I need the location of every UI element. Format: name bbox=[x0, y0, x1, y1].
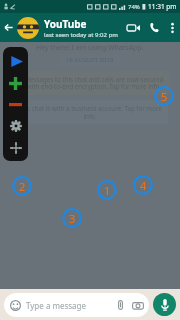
button[interactable]: Emoji bbox=[4, 293, 149, 317]
staticText: 11:31 pm bbox=[148, 2, 177, 11]
staticText: This chat is with a business account. Ta… bbox=[18, 104, 162, 120]
staticText: Hey there! I am using WhatsApp. bbox=[36, 43, 144, 53]
button[interactable]: Camera bbox=[131, 299, 144, 312]
staticText: 1 bbox=[104, 183, 111, 198]
button[interactable]: Messages to this chat and calls are now … bbox=[10, 71, 170, 95]
staticText: 74% bbox=[128, 3, 140, 11]
staticText: 3 bbox=[69, 211, 76, 226]
button[interactable]: Video call bbox=[122, 13, 144, 42]
staticText: last seen today at 9:02 pm bbox=[44, 31, 118, 39]
staticText: 5 bbox=[161, 89, 168, 104]
button[interactable]: Attach bbox=[114, 299, 126, 311]
button[interactable]: Emoji bbox=[9, 299, 22, 312]
button[interactable]: Play bbox=[8, 53, 24, 69]
button[interactable]: Back bbox=[0, 13, 17, 42]
staticText: Type a message bbox=[26, 300, 87, 311]
staticText: 4 bbox=[140, 178, 147, 193]
button[interactable]: Settings bbox=[8, 118, 23, 133]
button[interactable]: Call bbox=[144, 13, 164, 42]
staticText: 2 bbox=[19, 179, 26, 194]
button[interactable]: Increase bbox=[8, 76, 23, 91]
button[interactable]: Profile photo bbox=[17, 17, 39, 39]
staticText: 16 AUGUST 2019 bbox=[66, 56, 114, 64]
button[interactable]: Decrease bbox=[9, 98, 22, 111]
button[interactable]: Move bbox=[8, 140, 23, 155]
button[interactable]: This chat is with a business account. Ta… bbox=[12, 100, 168, 124]
button[interactable]: Record voice message bbox=[153, 293, 176, 316]
staticText: Messages to this chat and calls are now … bbox=[24, 75, 164, 91]
button[interactable]: More options bbox=[164, 13, 180, 42]
staticText: YouTube bbox=[44, 17, 87, 31]
button[interactable]: YouTube bbox=[44, 13, 122, 42]
